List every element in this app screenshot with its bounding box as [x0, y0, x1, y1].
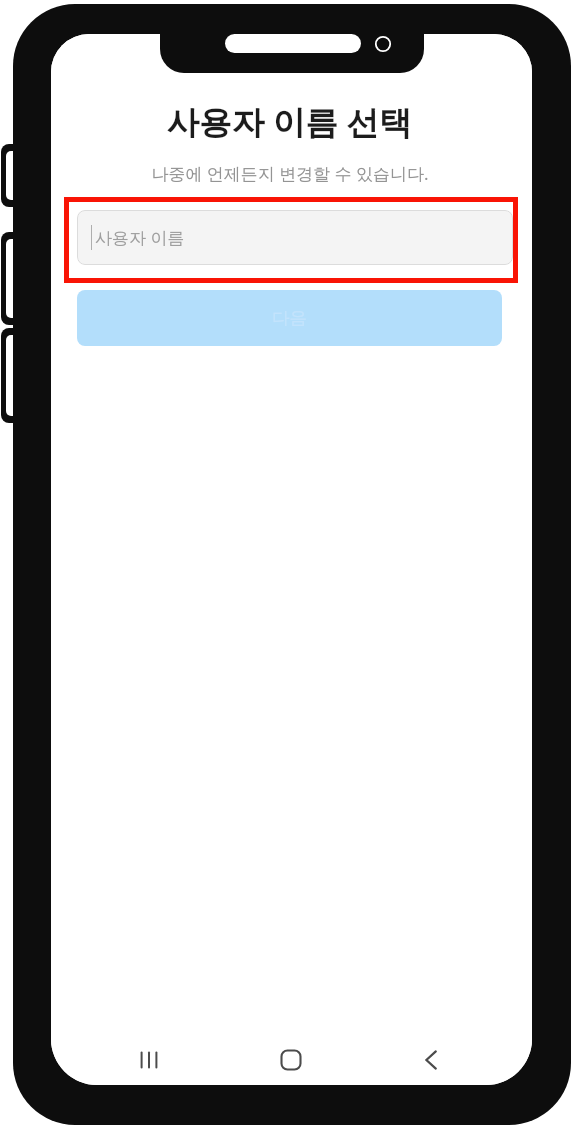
- staticText: 사용자 이름 선택: [166, 99, 412, 144]
- staticText: 다음: [272, 307, 307, 329]
- button[interactable]: 사용자 이름 입력: [77, 210, 513, 265]
- button[interactable]: Recents: [125, 1036, 173, 1084]
- button[interactable]: Home: [267, 1036, 315, 1084]
- button[interactable]: Back: [407, 1036, 455, 1084]
- button[interactable]: 다음: [77, 290, 502, 346]
- staticText: 나중에 언제든지 변경할 수 있습니다.: [151, 162, 429, 185]
- staticText: 사용자 이름: [95, 226, 185, 249]
